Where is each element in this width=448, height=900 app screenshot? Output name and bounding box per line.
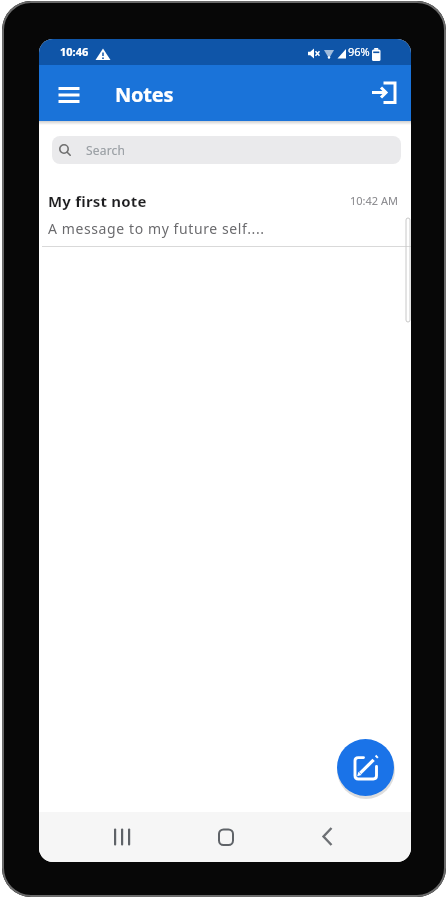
button[interactable]: [371, 75, 407, 111]
button[interactable]: [51, 77, 87, 113]
staticText: 10:42 AM: [350, 193, 398, 208]
staticText: Search: [86, 142, 126, 158]
staticText: My first note: [48, 191, 147, 211]
button[interactable]: [103, 819, 139, 855]
staticText: A message to my future self....: [48, 219, 265, 238]
button[interactable]: Search: [52, 136, 401, 164]
button[interactable]: My first note: [39, 179, 411, 246]
staticText: Notes: [115, 81, 174, 108]
button[interactable]: [337, 739, 394, 796]
button[interactable]: [310, 819, 346, 855]
button[interactable]: [208, 819, 244, 855]
staticText: 10:46: [60, 44, 89, 59]
staticText: 96%: [348, 44, 370, 59]
